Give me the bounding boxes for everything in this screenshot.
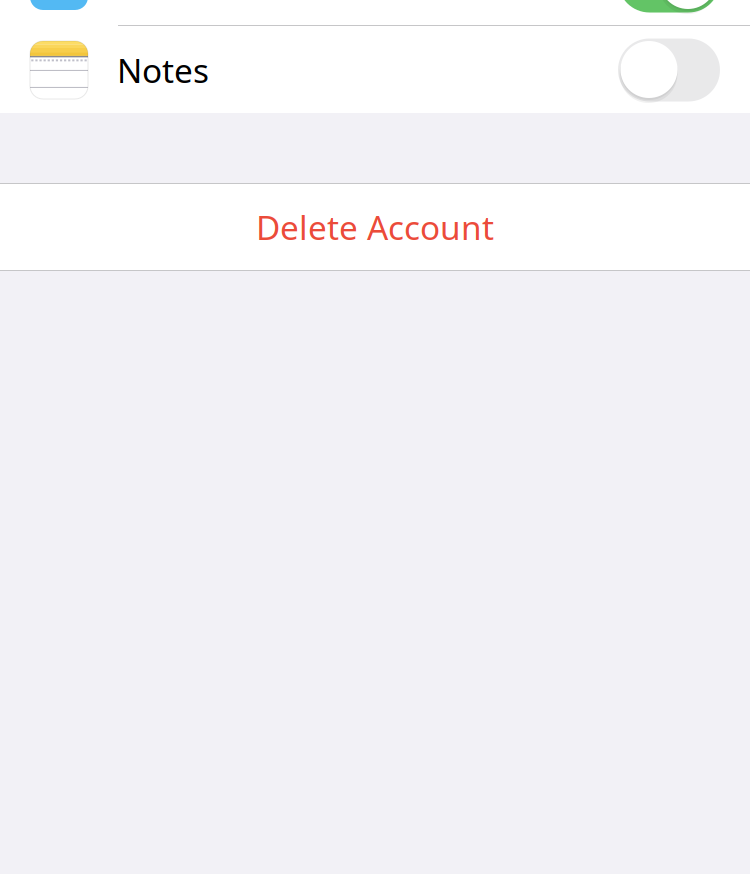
button[interactable]: Delete Account: [0, 184, 750, 270]
staticText: Delete Account: [256, 205, 494, 249]
button[interactable]: Mail: [0, 0, 750, 25]
button[interactable]: Notes: [0, 26, 750, 114]
staticText: Notes: [117, 48, 209, 92]
